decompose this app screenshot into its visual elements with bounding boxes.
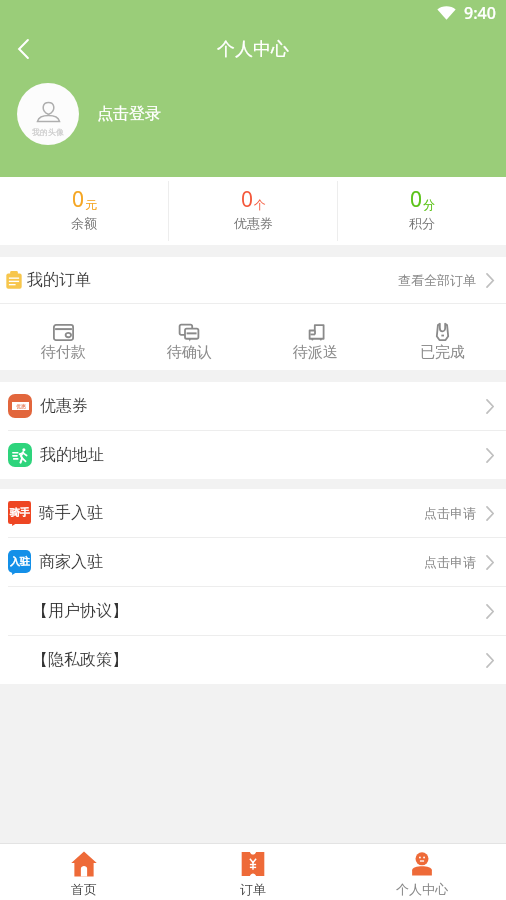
staticText: 骑手入驻	[39, 503, 103, 523]
staticText: 入驻	[10, 555, 30, 568]
staticText: 查看全部订单	[398, 272, 476, 288]
button[interactable]: 已完成	[379, 304, 506, 370]
button[interactable]: 个人中心	[337, 844, 506, 900]
button[interactable]: 【隐私政策】	[0, 636, 506, 684]
button[interactable]: 待确认	[126, 304, 252, 370]
button[interactable]: 优惠	[0, 382, 506, 430]
staticText: 0	[241, 185, 254, 214]
staticText: 待派送	[293, 343, 338, 362]
button[interactable]: Avatar	[17, 83, 79, 145]
staticText: 点击申请	[424, 554, 476, 570]
staticText: 0	[410, 185, 423, 214]
staticText: 元	[85, 197, 97, 212]
staticText: 点击申请	[424, 505, 476, 521]
staticText: 已完成	[420, 343, 465, 362]
staticText: 待确认	[167, 343, 212, 362]
staticText: 我的地址	[40, 445, 104, 465]
staticText: 个	[254, 197, 266, 212]
staticText: 【隐私政策】	[32, 650, 128, 670]
staticText: 点击登录	[97, 104, 161, 124]
staticText: 优惠券	[40, 396, 88, 416]
button[interactable]: 【用户协议】	[0, 587, 506, 635]
staticText: 9:40	[464, 2, 496, 24]
staticText: 优惠券	[234, 215, 273, 231]
staticText: 我的头像	[32, 127, 64, 137]
staticText: 商家入驻	[39, 552, 103, 572]
staticText: 【用户协议】	[32, 601, 128, 621]
staticText: 首页	[71, 881, 97, 897]
staticText: 个人中心	[396, 881, 448, 897]
button[interactable]: 订单	[168, 844, 337, 900]
button[interactable]: 0	[169, 177, 337, 245]
staticText: 待付款	[41, 343, 86, 362]
button[interactable]: 我的订单	[0, 257, 506, 303]
button[interactable]: 0	[0, 177, 168, 245]
button[interactable]: Back	[0, 26, 46, 72]
staticText: 个人中心	[217, 38, 289, 61]
staticText: 订单	[240, 881, 266, 897]
staticText: 余额	[71, 215, 97, 231]
button[interactable]: 首页	[0, 844, 168, 900]
button[interactable]: 0	[338, 177, 506, 245]
staticText: 骑手	[10, 506, 30, 519]
button[interactable]: 入驻	[0, 538, 506, 586]
staticText: 分	[423, 197, 435, 212]
staticText: 0	[72, 185, 85, 214]
button[interactable]: 待派送	[252, 304, 379, 370]
button[interactable]: 我的地址	[0, 431, 506, 479]
staticText: 积分	[409, 215, 435, 231]
staticText: 优惠	[16, 403, 26, 409]
staticText: 我的订单	[27, 270, 91, 290]
button[interactable]: 骑手	[0, 489, 506, 537]
button[interactable]: 待付款	[0, 304, 126, 370]
